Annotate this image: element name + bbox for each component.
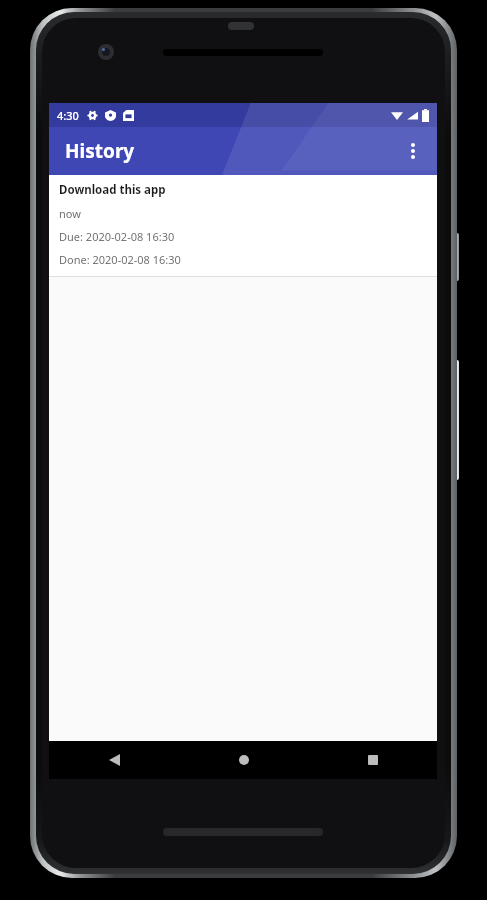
staticText: Download this app	[59, 182, 166, 198]
button[interactable]: Download this app	[49, 175, 437, 276]
staticText: History	[65, 138, 135, 164]
button[interactable]: Home	[227, 743, 261, 777]
button[interactable]: Recent apps	[356, 743, 390, 777]
button[interactable]: Back	[97, 743, 131, 777]
button[interactable]: More options	[389, 127, 437, 175]
staticText: now	[59, 206, 81, 221]
staticText: 4:30	[57, 108, 79, 123]
staticText: Due: 2020-02-08 16:30	[59, 229, 175, 244]
staticText: Done: 2020-02-08 16:30	[59, 252, 181, 267]
